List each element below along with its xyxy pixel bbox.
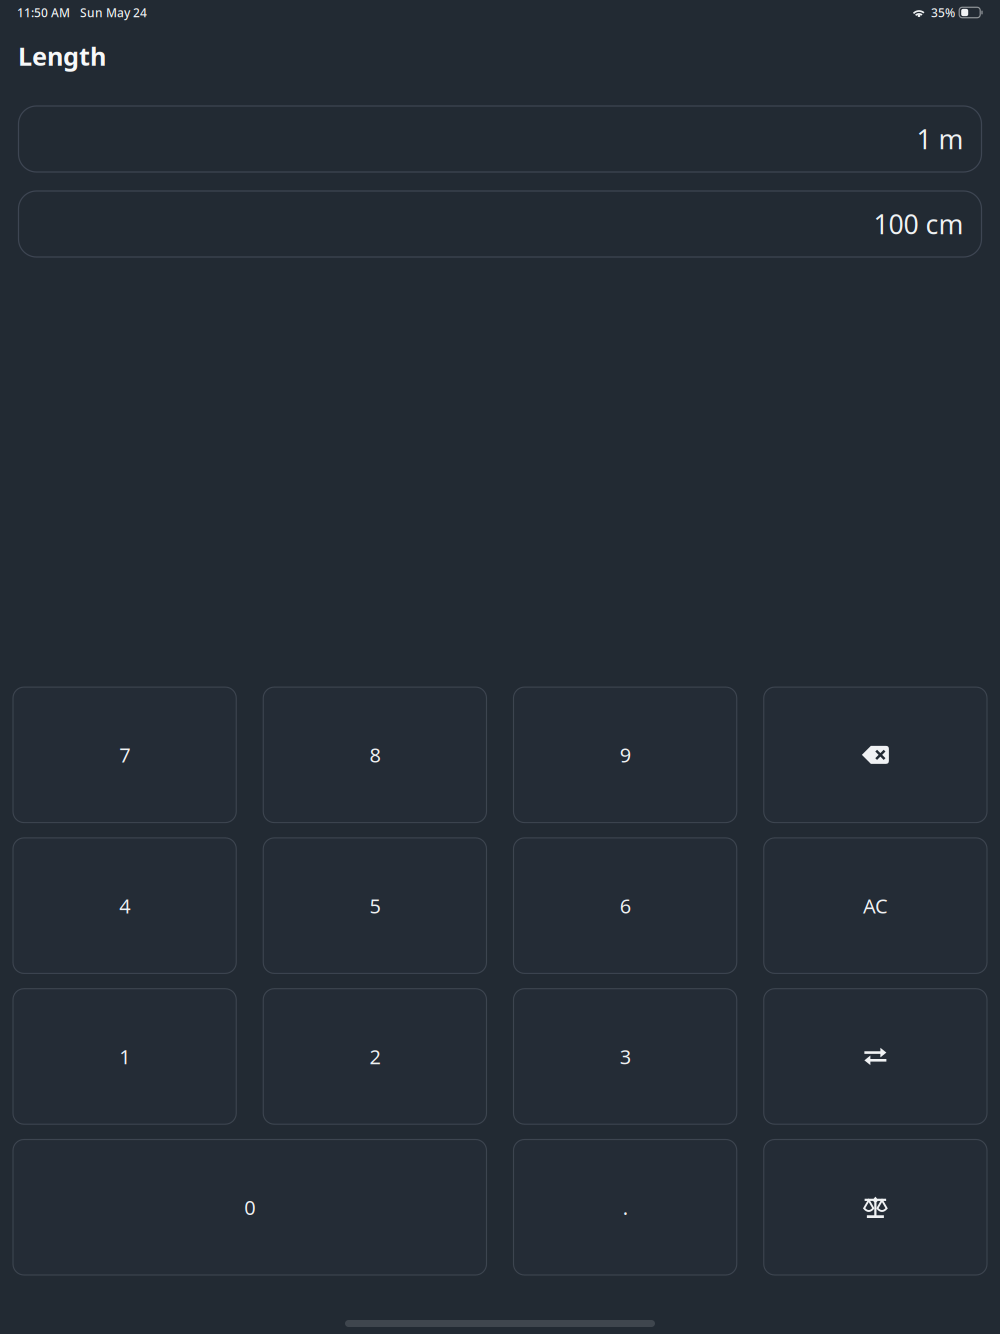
staticText: 0 — [244, 1194, 255, 1221]
button[interactable]: 100 cm — [18, 191, 981, 257]
button[interactable]: Change unit category — [764, 1139, 987, 1275]
button[interactable]: 4 — [13, 838, 236, 973]
button[interactable]: 6 — [513, 838, 737, 973]
button[interactable]: 7 — [13, 687, 236, 823]
button[interactable]: . — [513, 1139, 737, 1275]
staticText: 1 — [119, 1043, 130, 1070]
staticText: 3 — [620, 1043, 631, 1070]
button[interactable]: 2 — [263, 989, 486, 1124]
staticText: 8 — [369, 742, 380, 768]
staticText: AC — [863, 892, 888, 919]
button[interactable]: 5 — [263, 838, 486, 973]
staticText: 7 — [119, 742, 130, 768]
button[interactable]: Swap units — [764, 989, 987, 1124]
staticText: 5 — [369, 892, 380, 919]
staticText: Length — [18, 39, 106, 73]
staticText: . — [623, 1194, 628, 1221]
staticText: 4 — [119, 892, 130, 919]
button[interactable]: 1 m — [18, 106, 981, 172]
button[interactable]: AC — [764, 838, 987, 973]
button[interactable]: 3 — [513, 989, 737, 1124]
button[interactable]: Delete — [764, 687, 987, 823]
button[interactable]: 8 — [263, 687, 486, 823]
button[interactable]: 9 — [513, 687, 737, 823]
staticText: 2 — [369, 1043, 380, 1070]
staticText: 100 cm — [873, 206, 963, 242]
staticText: 6 — [620, 892, 631, 919]
staticText: 9 — [620, 742, 631, 768]
button[interactable]: 1 — [13, 989, 236, 1124]
button[interactable]: 0 — [13, 1139, 486, 1275]
staticText: 35% — [931, 4, 955, 20]
staticText: 11:50 AM — [17, 4, 70, 20]
staticText: Sun May 24 — [80, 4, 147, 20]
staticText: 1 m — [916, 121, 963, 157]
